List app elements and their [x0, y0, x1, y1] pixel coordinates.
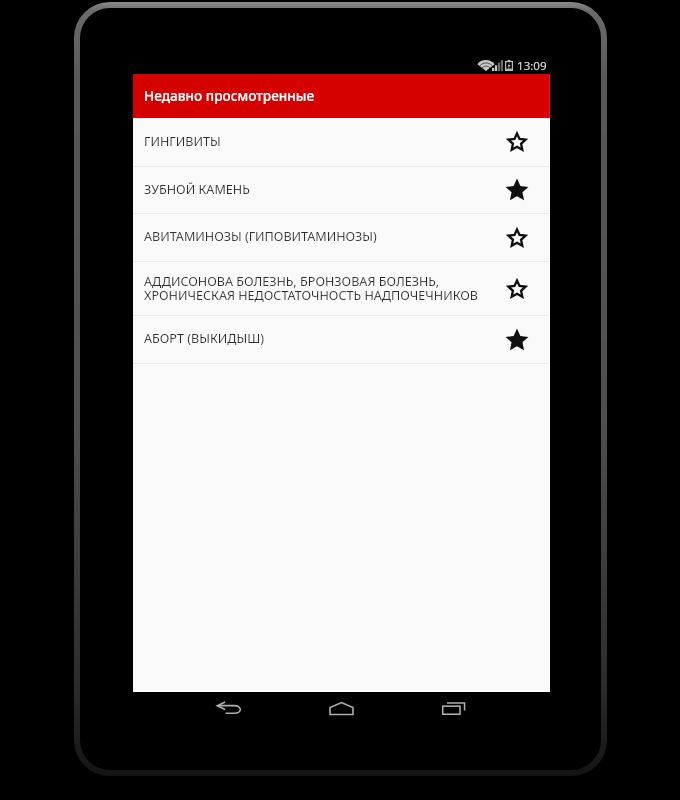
button[interactable]: АБОРТ (ВЫКИДЫШ)	[133, 316, 550, 363]
staticText: АДДИСОНОВА БОЛЕЗНЬ, БРОНЗОВАЯ БОЛЕЗНЬ, Х…	[144, 273, 489, 303]
button[interactable]: Недавно просмотренные	[133, 74, 550, 118]
staticText: ГИНГИВИТЫ	[144, 133, 489, 150]
staticText: 13:09	[517, 58, 547, 74]
button[interactable]: Recents	[397, 694, 510, 722]
button[interactable]: Home	[285, 694, 397, 722]
button[interactable]: АДДИСОНОВА БОЛЕЗНЬ, БРОНЗОВАЯ БОЛЕЗНЬ, Х…	[133, 262, 550, 315]
button[interactable]: Bookmark	[484, 214, 550, 261]
button[interactable]: ЗУБНОЙ КАМЕНЬ	[133, 167, 550, 213]
button[interactable]: ГИНГИВИТЫ	[133, 118, 550, 166]
button[interactable]: АВИТАМИНОЗЫ (ГИПОВИТАМИНОЗЫ)	[133, 214, 550, 261]
staticText: АВИТАМИНОЗЫ (ГИПОВИТАМИНОЗЫ)	[144, 228, 489, 245]
button[interactable]: Remove bookmark	[484, 167, 550, 213]
button[interactable]: Bookmark	[484, 262, 550, 315]
staticText: ЗУБНОЙ КАМЕНЬ	[144, 181, 489, 198]
button[interactable]: Back	[172, 694, 285, 722]
staticText: АБОРТ (ВЫКИДЫШ)	[144, 330, 489, 347]
button[interactable]: Bookmark	[484, 118, 550, 166]
button[interactable]: Remove bookmark	[484, 316, 550, 363]
staticText: Недавно просмотренные	[144, 86, 315, 105]
